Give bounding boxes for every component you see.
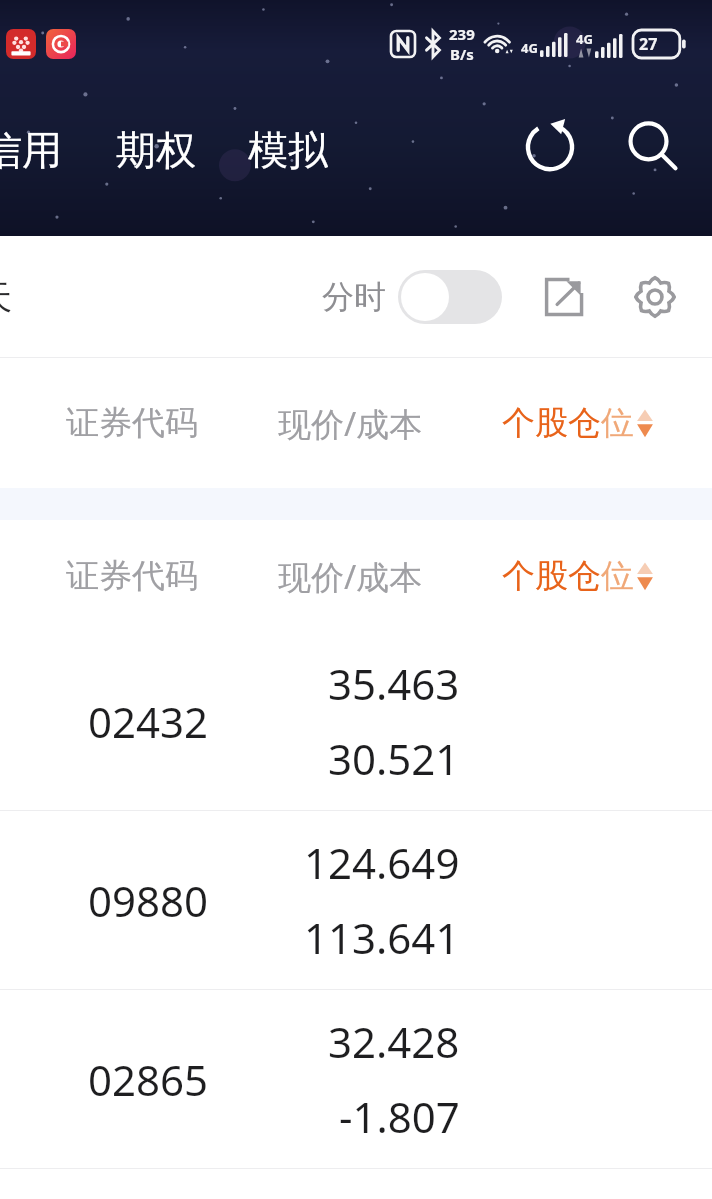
staticText: 证券代码 bbox=[66, 555, 198, 597]
staticText: 证券代码 bbox=[66, 402, 198, 444]
staticText: 天 bbox=[0, 276, 12, 319]
button[interactable]: 个股 bbox=[502, 549, 654, 603]
button[interactable]: Settings bbox=[622, 264, 688, 330]
button[interactable]: 期权 bbox=[108, 119, 204, 181]
button[interactable]: 分时 bbox=[318, 264, 506, 330]
staticText: 4G bbox=[521, 39, 538, 57]
staticText: 现价/成本 bbox=[278, 554, 423, 599]
staticText: 239 bbox=[449, 24, 475, 44]
staticText: 个股 bbox=[502, 555, 568, 597]
staticText: 35.463 bbox=[328, 655, 460, 712]
button[interactable]: 现价/成本 bbox=[272, 395, 429, 452]
button[interactable]: Share bbox=[532, 264, 598, 330]
button[interactable]: 02432 bbox=[0, 632, 712, 810]
staticText: 仓 bbox=[568, 555, 601, 597]
button[interactable]: Refresh bbox=[512, 108, 588, 184]
button[interactable]: Search bbox=[614, 108, 690, 184]
button[interactable]: 现价/成本 bbox=[272, 548, 429, 605]
staticText: 期权 bbox=[116, 125, 196, 175]
staticText: 09880 bbox=[88, 872, 209, 929]
button[interactable]: 09880 bbox=[0, 811, 712, 989]
staticText: 4G bbox=[576, 30, 593, 48]
staticText: 信用 bbox=[0, 125, 62, 175]
staticText: 02432 bbox=[88, 693, 209, 750]
staticText: 27 bbox=[639, 33, 658, 55]
button[interactable]: Toggle intraday chart bbox=[398, 270, 502, 324]
staticText: 现价/成本 bbox=[278, 401, 423, 446]
staticText: 30.521 bbox=[328, 730, 460, 787]
button[interactable]: 信用 bbox=[0, 119, 70, 181]
staticText: 分时 bbox=[322, 277, 386, 317]
staticText: 113.641 bbox=[304, 909, 460, 966]
button[interactable]: 模拟 bbox=[240, 119, 336, 181]
staticText: 位 bbox=[601, 402, 634, 444]
button[interactable]: 02865 bbox=[0, 990, 712, 1168]
staticText: 仓 bbox=[568, 402, 601, 444]
staticText: B/s bbox=[450, 44, 474, 64]
button[interactable]: 证券代码 bbox=[60, 396, 204, 450]
staticText: -1.807 bbox=[339, 1088, 460, 1145]
button[interactable]: 个股 bbox=[502, 396, 654, 450]
button[interactable]: 证券代码 bbox=[60, 549, 204, 603]
staticText: 124.649 bbox=[304, 834, 460, 891]
staticText: 位 bbox=[601, 555, 634, 597]
staticText: 02865 bbox=[88, 1051, 209, 1108]
staticText: 32.428 bbox=[328, 1013, 460, 1070]
staticText: 模拟 bbox=[248, 125, 328, 175]
staticText: 个股 bbox=[502, 402, 568, 444]
